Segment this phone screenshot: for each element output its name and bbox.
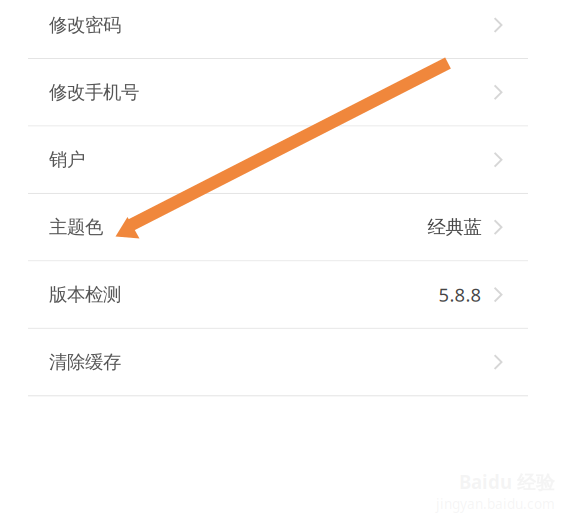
staticText: 修改密码 — [49, 13, 121, 37]
button[interactable]: 版本检测 — [0, 261, 587, 328]
staticText: 修改手机号 — [49, 81, 139, 104]
staticText: Baidu 经验 — [459, 469, 555, 494]
button[interactable]: 清除缓存 — [0, 329, 587, 395]
staticText: 清除缓存 — [49, 350, 121, 374]
button[interactable]: 销户 — [0, 126, 587, 193]
staticText: 5.8.8 — [438, 282, 481, 307]
staticText: 经典蓝 — [427, 216, 481, 239]
button[interactable]: 主题色 — [0, 194, 587, 260]
staticText: 版本检测 — [49, 283, 121, 306]
button[interactable]: 修改手机号 — [0, 59, 587, 126]
button[interactable]: 修改密码 — [0, 0, 587, 58]
staticText: 主题色 — [49, 216, 103, 239]
staticText: jingyan.baidu.com — [436, 494, 555, 513]
staticText: 销户 — [49, 148, 85, 171]
